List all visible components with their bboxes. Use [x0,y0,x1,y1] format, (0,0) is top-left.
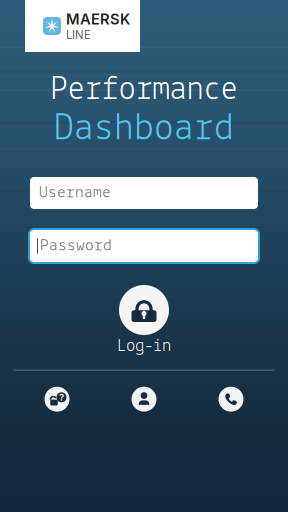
staticText: MAERSK [66,10,130,28]
button[interactable]: Contact us [218,387,243,412]
staticText: Username [39,184,111,202]
staticText: ? [59,392,64,403]
button[interactable]: Log-in [117,285,171,356]
staticText: Password [40,237,112,255]
staticText: Dashboard [54,110,234,149]
staticText: LINE [66,28,91,42]
button[interactable]: Username [28,177,260,209]
staticText: Performance [50,73,237,108]
staticText: Log-in [117,337,171,356]
button[interactable]: Forgot password [44,387,69,412]
button[interactable]: Password [28,228,260,264]
button[interactable]: Register [131,387,156,412]
